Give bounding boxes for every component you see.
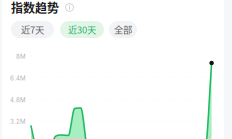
button[interactable]: 全部 xyxy=(109,21,137,38)
button[interactable]: 近7天 xyxy=(11,21,54,38)
staticText: 全部 xyxy=(114,23,132,36)
staticText: 指数趋势 xyxy=(11,0,59,16)
staticText: 4.8M xyxy=(10,96,26,104)
button[interactable]: 说明 xyxy=(59,3,74,12)
staticText: 6.4M xyxy=(10,74,26,82)
staticText: 3.2M xyxy=(10,118,26,125)
button[interactable]: 近30天 xyxy=(60,21,104,38)
staticText: 近30天 xyxy=(68,23,96,36)
staticText: 近7天 xyxy=(21,23,44,36)
staticText: 8M xyxy=(16,53,26,60)
